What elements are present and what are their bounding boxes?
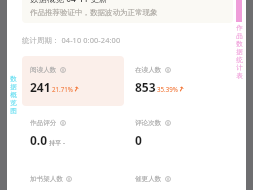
staticText: 概 bbox=[10, 91, 17, 99]
button[interactable]: 数据概览 04-11 更新 bbox=[22, 0, 233, 23]
staticText: 作品推荐验证中，数据波动为正常现象 bbox=[30, 8, 158, 17]
staticText: 催更人数 bbox=[135, 175, 162, 183]
staticText: 加书架人数 bbox=[30, 175, 63, 183]
staticText: 35.39% bbox=[157, 85, 178, 93]
staticText: 作 bbox=[236, 24, 243, 32]
staticText: 览 bbox=[10, 99, 17, 107]
staticText: 数据概览 04-11 更新 bbox=[30, 0, 108, 5]
staticText: 作品评分 bbox=[30, 119, 57, 127]
staticText: 图 bbox=[10, 107, 17, 115]
staticText: 阅读人数 bbox=[30, 66, 57, 74]
staticText: 持平 - bbox=[49, 138, 65, 146]
button[interactable]: 催更人数 bbox=[127, 165, 230, 190]
staticText: 0 bbox=[135, 132, 142, 148]
staticText: 数 bbox=[10, 75, 17, 83]
staticText: 241 bbox=[30, 79, 51, 95]
staticText: 在读人数 bbox=[135, 66, 162, 74]
staticText: 853 bbox=[135, 79, 156, 95]
staticText: 数 bbox=[236, 40, 243, 48]
staticText: 0.0 bbox=[30, 132, 48, 148]
staticText: 品 bbox=[236, 32, 243, 40]
button[interactable]: 在读人数 bbox=[127, 56, 230, 106]
staticText: 计 bbox=[236, 64, 243, 72]
staticText: 统计周期： 04-10 0:00-24:00 bbox=[22, 35, 121, 45]
button[interactable]: 作品评分 bbox=[22, 109, 124, 159]
button[interactable]: 加书架人数 bbox=[22, 165, 124, 190]
staticText: 评论次数 bbox=[135, 119, 162, 127]
button[interactable]: 阅读人数 bbox=[22, 56, 124, 106]
staticText: 统 bbox=[236, 56, 243, 64]
button[interactable]: 评论次数 bbox=[127, 109, 230, 159]
staticText: 据 bbox=[10, 83, 17, 91]
staticText: 21.71% bbox=[52, 85, 73, 93]
staticText: 据 bbox=[236, 48, 243, 56]
staticText: 表 bbox=[236, 72, 243, 80]
